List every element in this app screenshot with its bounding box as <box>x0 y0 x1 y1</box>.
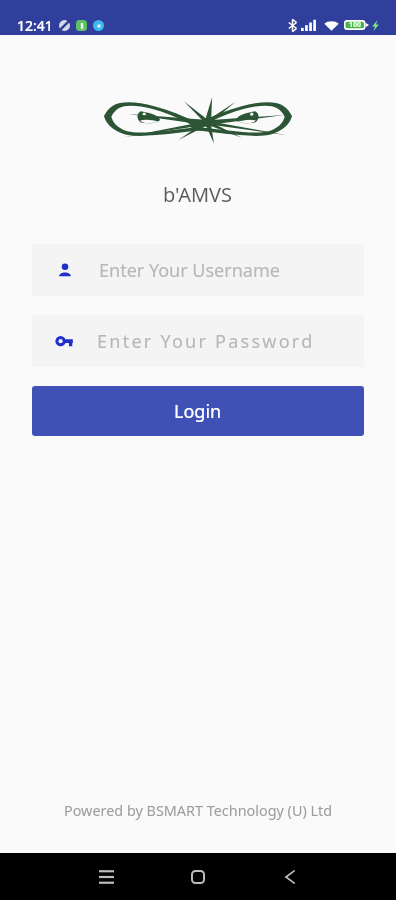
staticText: Login <box>174 399 222 424</box>
staticText: 100 <box>349 20 362 30</box>
button[interactable]: Recent apps <box>76 853 136 900</box>
staticText: Powered by BSMART Technology (U) Ltd <box>64 801 333 821</box>
button[interactable]: Enter Your Username <box>32 244 364 296</box>
staticText: Enter Your Username <box>99 258 280 283</box>
staticText: 12:41 <box>17 16 53 35</box>
button[interactable]: Back <box>260 853 320 900</box>
button[interactable]: Home <box>168 853 228 900</box>
staticText: b'AMVS <box>163 181 233 208</box>
button[interactable]: Login <box>32 386 364 436</box>
staticText: Enter Your Password <box>97 329 315 354</box>
button[interactable]: Enter Your Password <box>32 315 364 367</box>
